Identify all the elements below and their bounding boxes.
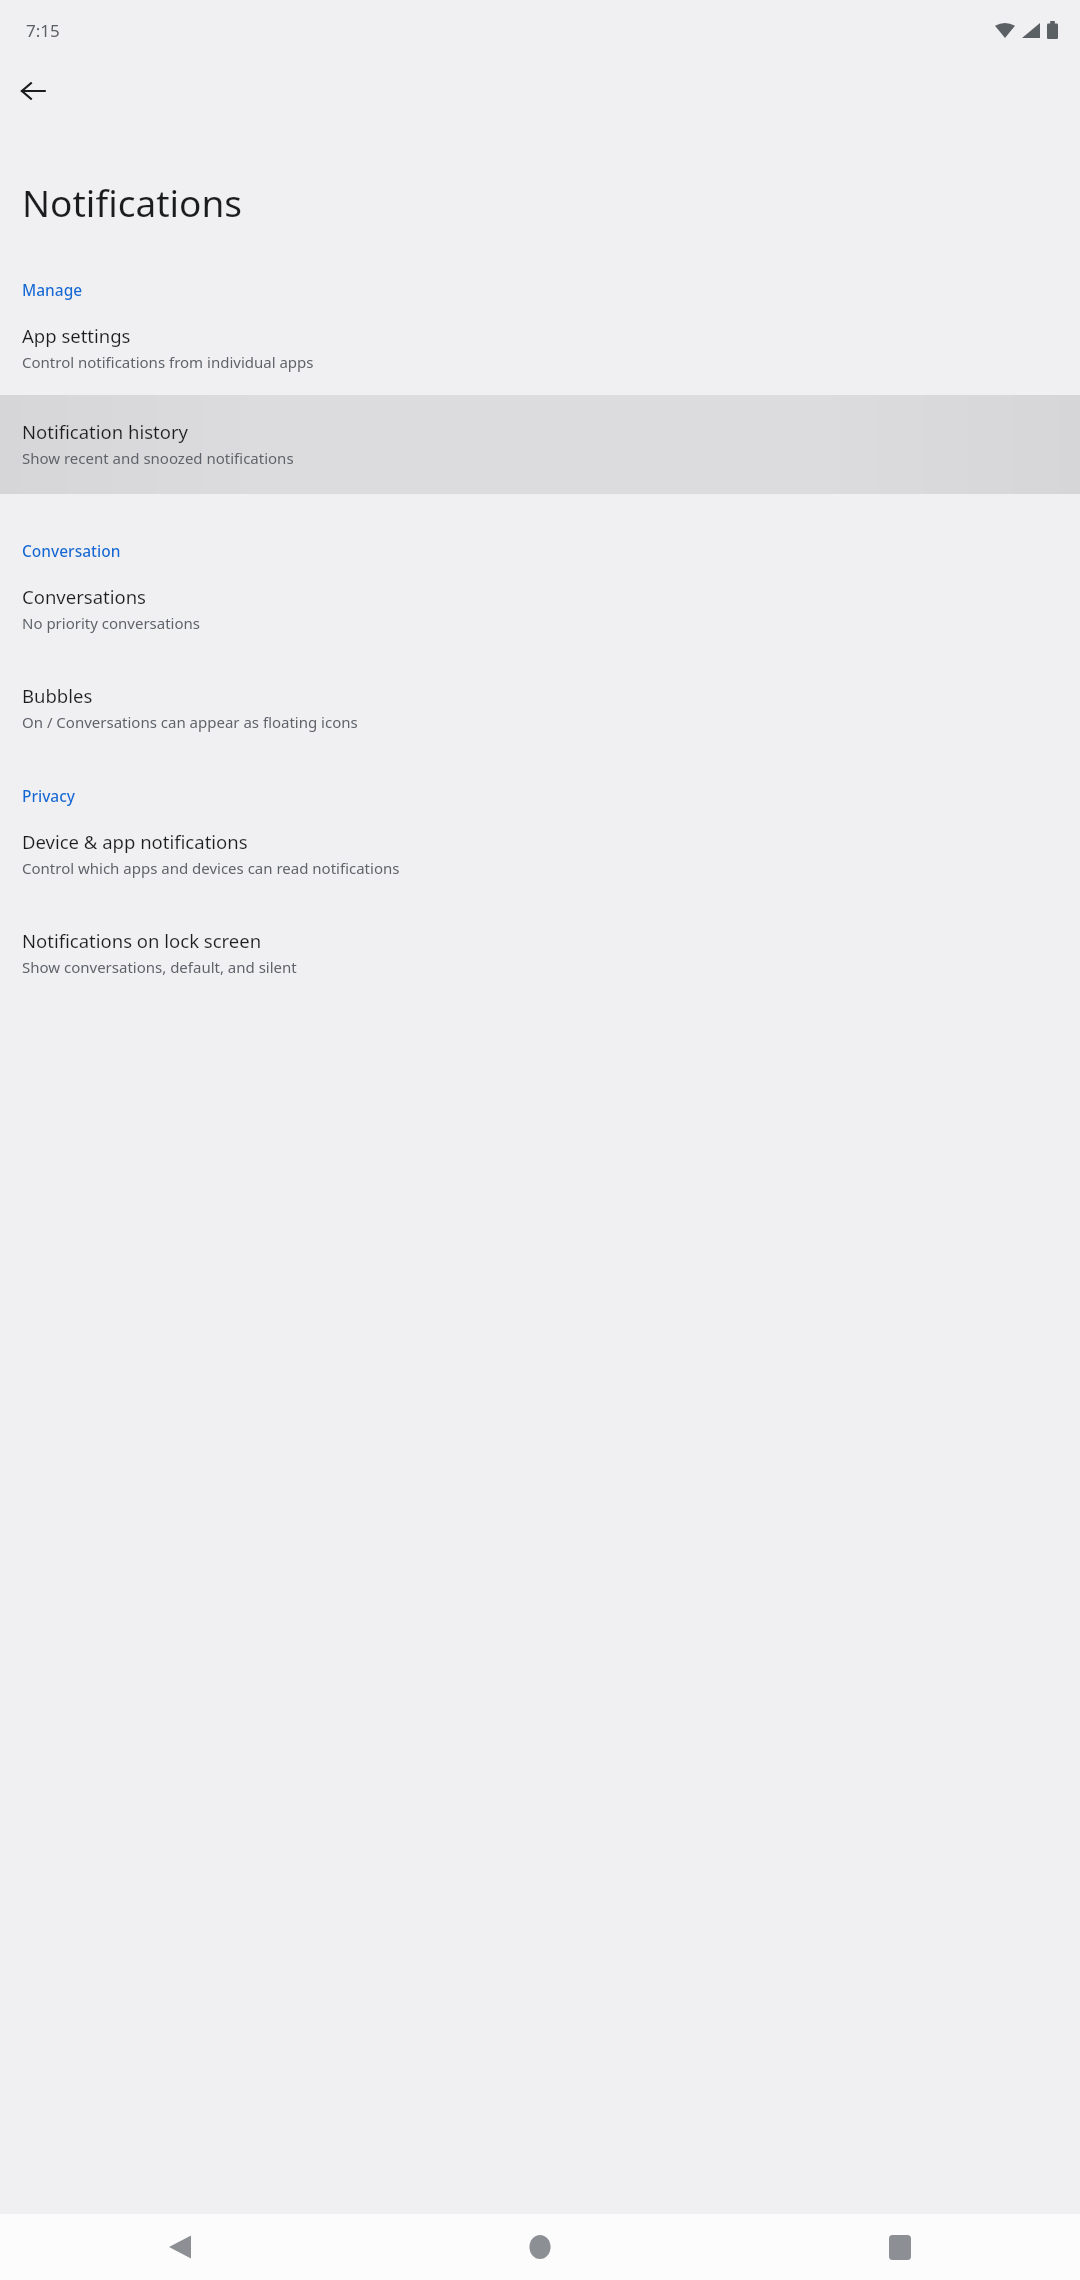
button[interactable]: Conversations: [0, 561, 1080, 656]
staticText: App settings: [22, 323, 131, 348]
staticText: Notifications: [22, 177, 243, 227]
staticText: On / Conversations can appear as floatin…: [22, 712, 358, 732]
button[interactable]: Back: [9, 67, 57, 115]
staticText: Control notifications from individual ap…: [22, 352, 314, 372]
staticText: No priority conversations: [22, 613, 201, 633]
staticText: Show conversations, default, and silent: [22, 957, 297, 977]
button[interactable]: Notifications on lock screen: [0, 928, 1080, 1000]
staticText: Conversations: [22, 584, 146, 609]
button[interactable]: Bubbles: [0, 683, 1080, 755]
staticText: Control which apps and devices can read …: [22, 858, 400, 878]
button[interactable]: App settings: [0, 300, 1080, 395]
staticText: Device & app notifications: [22, 829, 248, 854]
staticText: 7:15: [26, 19, 60, 42]
staticText: Show recent and snoozed notifications: [22, 448, 294, 468]
staticText: Manage: [22, 279, 83, 300]
staticText: Bubbles: [22, 683, 93, 708]
staticText: Notifications on lock screen: [22, 928, 262, 953]
button[interactable]: Back: [0, 2214, 360, 2280]
button[interactable]: Notification history: [0, 395, 1080, 494]
button[interactable]: Device & app notifications: [0, 806, 1080, 901]
button[interactable]: Recent apps: [720, 2214, 1080, 2280]
staticText: Conversation: [22, 540, 121, 561]
button[interactable]: Home: [360, 2214, 720, 2280]
staticText: Notification history: [22, 419, 189, 444]
staticText: Privacy: [22, 785, 76, 806]
